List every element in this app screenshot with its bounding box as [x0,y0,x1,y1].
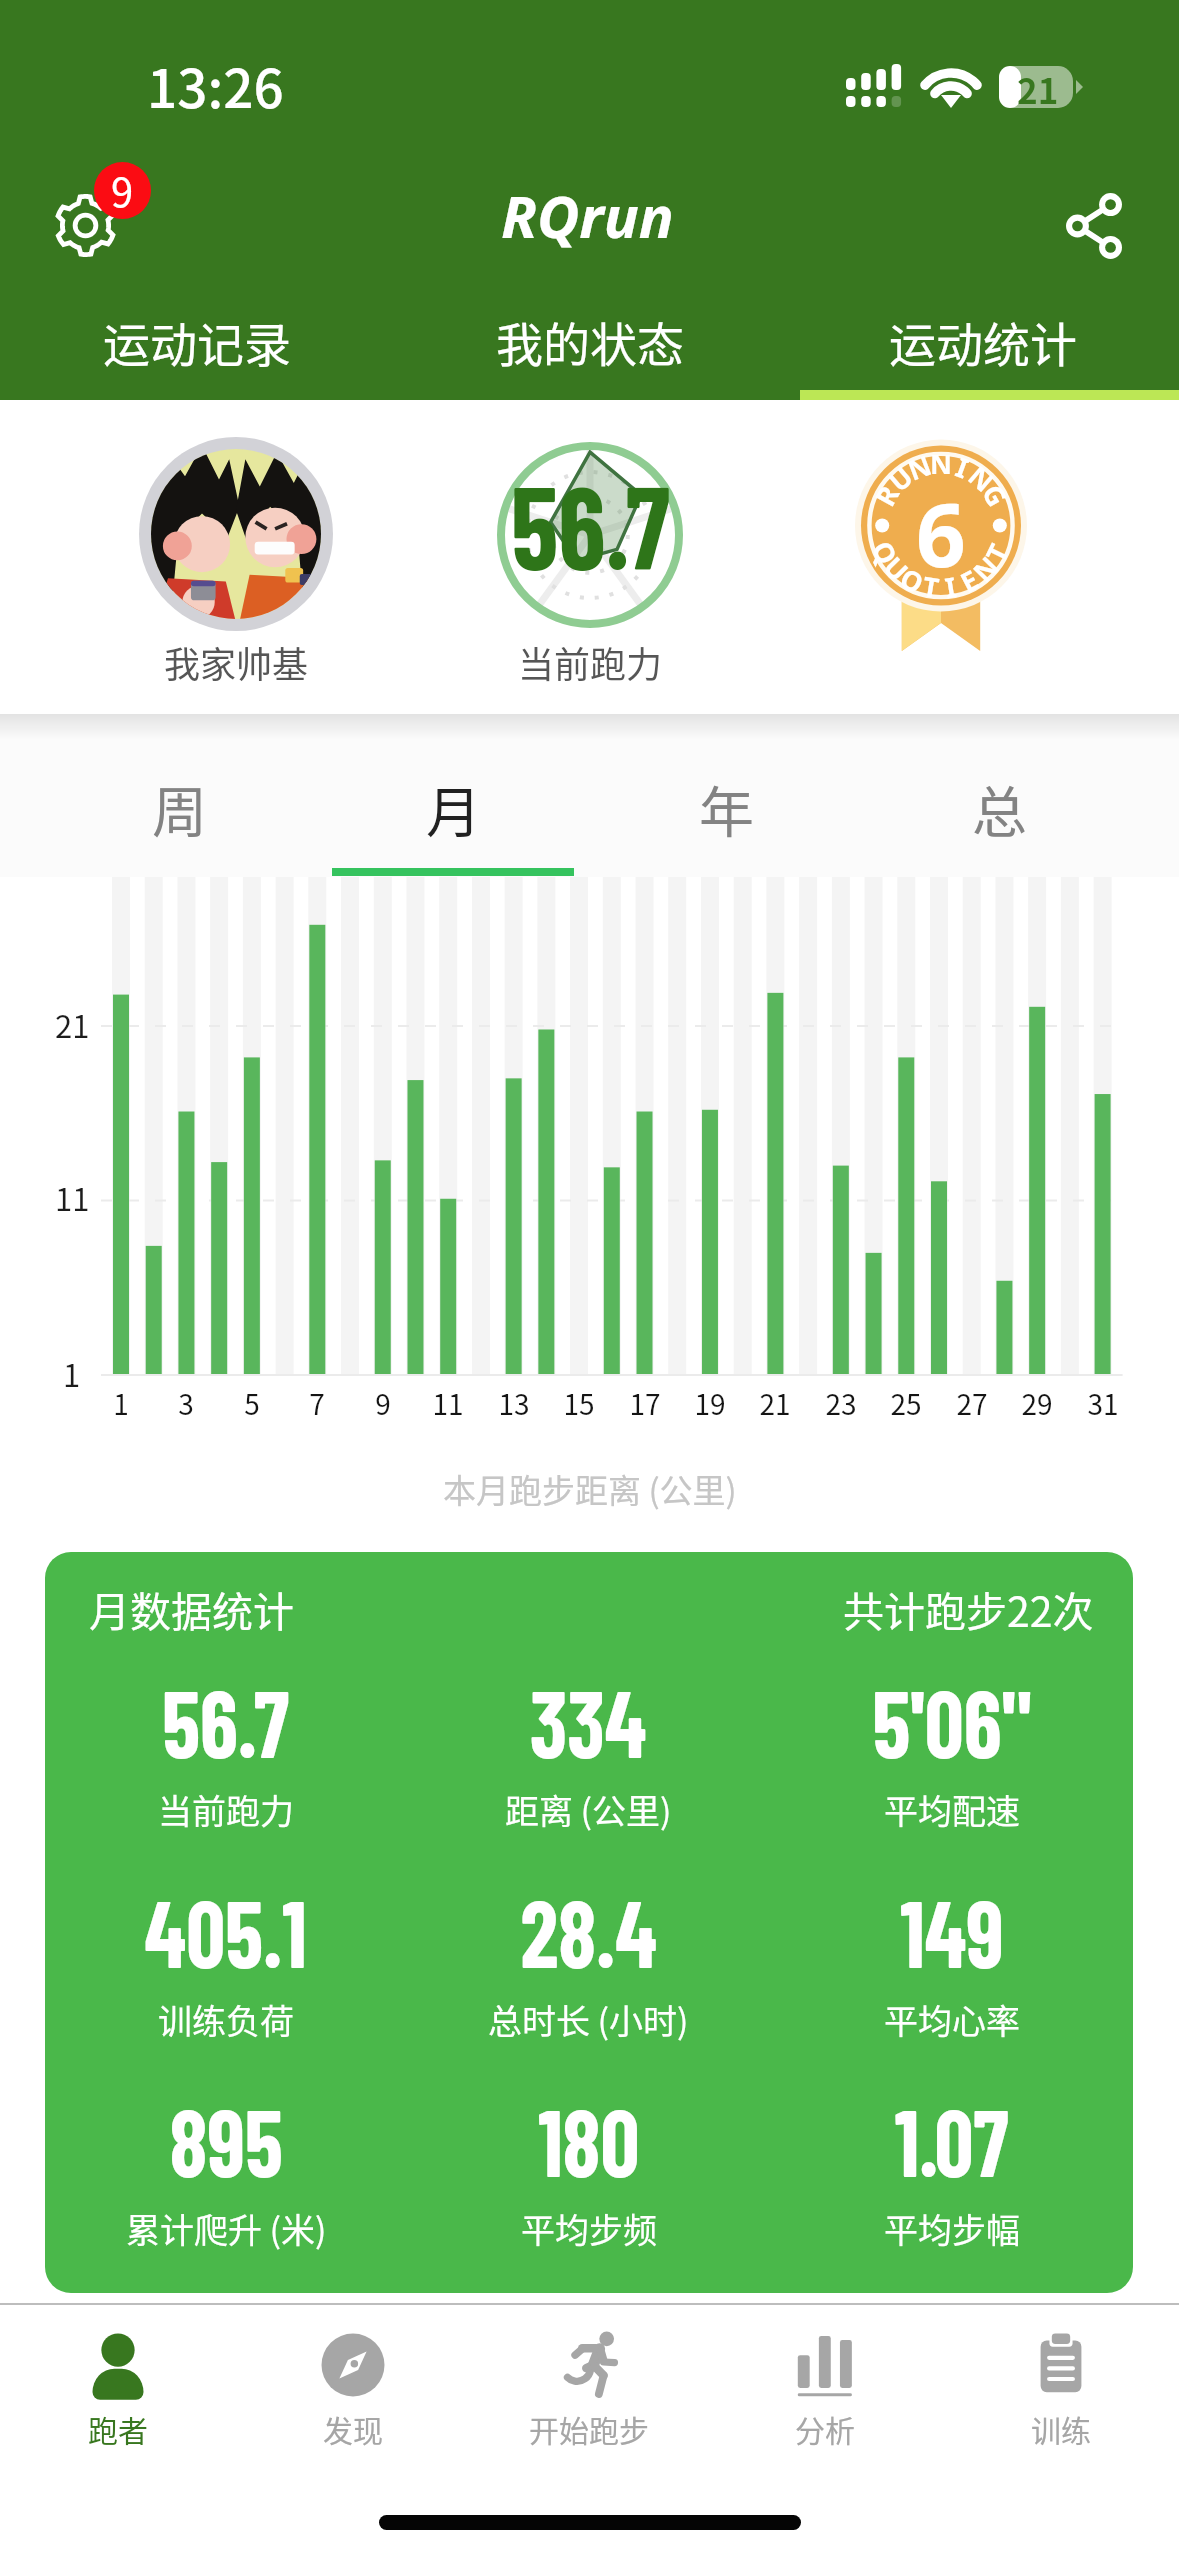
staticText: 分析 [795,2407,855,2450]
staticText: 9 [375,1383,391,1424]
staticText: 56.7 [511,453,670,593]
staticText: 11 [55,1175,90,1220]
button[interactable]: 我家帅基 [128,428,344,698]
staticText: 1 [63,1351,81,1396]
button[interactable]: Running Quotient badge 6 [841,423,1041,683]
staticText: 本月跑步距离 (公里) [443,1465,737,1513]
staticText: 56.7 [162,1665,290,1777]
button[interactable]: 56.7 [482,428,698,698]
staticText: 28.4 [520,1875,657,1987]
staticText: 月数据统计 [89,1579,294,1638]
staticText: 9 [111,162,134,218]
staticText: 平均步幅 [884,2204,1020,2253]
button[interactable]: 开始跑步 [471,2305,707,2465]
staticText: 总时长 (小时) [488,1995,689,2044]
staticText: 5'06" [872,1665,1032,1777]
button[interactable]: 我的状态 [393,292,786,400]
staticText: RQrun [501,176,674,255]
staticText: 发现 [323,2407,383,2450]
staticText: 运动记录 [103,307,291,375]
staticText: 15 [563,1383,595,1424]
staticText: 17 [629,1383,661,1424]
staticText: 149 [900,1875,1004,1987]
staticText: 周 [152,768,208,848]
button[interactable]: 训练 [943,2305,1179,2465]
staticText: 5 [244,1383,260,1424]
button[interactable]: 发现 [235,2305,471,2465]
staticText: 当前跑力 [158,1785,294,1834]
button[interactable]: Share [1043,172,1147,282]
staticText: 年 [699,768,755,848]
button[interactable]: Settings [40,155,166,265]
staticText: 平均配速 [884,1785,1020,1834]
staticText: 180 [538,2084,640,2196]
button[interactable]: 周 [43,716,317,876]
staticText: 平均步频 [521,2204,657,2253]
staticText: 13:26 [147,47,284,124]
button[interactable]: 运动记录 [0,292,393,400]
staticText: 跑者 [88,2407,148,2450]
button[interactable]: 运动统计 [786,292,1179,400]
staticText: 当前跑力 [518,636,663,688]
staticText: 29 [1021,1383,1053,1424]
staticText: 21 [55,1002,90,1047]
button[interactable]: 跑者 [0,2305,235,2465]
staticText: 31 [1087,1383,1119,1424]
button[interactable]: 总 [863,716,1136,876]
staticText: 27 [956,1383,988,1424]
button[interactable]: 月 [317,716,590,876]
staticText: 累计爬升 (米) [126,2204,327,2253]
staticText: 405.1 [145,1875,307,1987]
staticText: 训练 [1031,2407,1091,2450]
staticText: 我的状态 [496,307,684,375]
staticText: 1 [113,1383,129,1424]
staticText: 我家帅基 [164,636,309,688]
staticText: 23 [825,1383,857,1424]
staticText: 11 [432,1383,464,1424]
staticText: 平均心率 [884,1995,1020,2044]
staticText: 21 [759,1383,791,1424]
staticText: 21 [1017,63,1059,114]
button[interactable]: 分析 [707,2305,943,2465]
button[interactable]: 年 [590,716,863,876]
staticText: 7 [309,1383,325,1424]
staticText: 334 [530,1665,647,1777]
staticText: 19 [694,1383,726,1424]
staticText: 总 [972,768,1028,848]
staticText: 1.07 [895,2084,1009,2196]
staticText: 895 [170,2084,283,2196]
staticText: 25 [890,1383,922,1424]
staticText: 共计跑步22次 [843,1579,1094,1638]
staticText: 月 [426,768,482,848]
staticText: 开始跑步 [529,2407,649,2450]
staticText: 3 [178,1383,194,1424]
staticText: 距离 (公里) [505,1785,672,1834]
staticText: 运动统计 [889,307,1077,375]
staticText: 训练负荷 [158,1995,294,2044]
staticText: 13 [498,1383,530,1424]
